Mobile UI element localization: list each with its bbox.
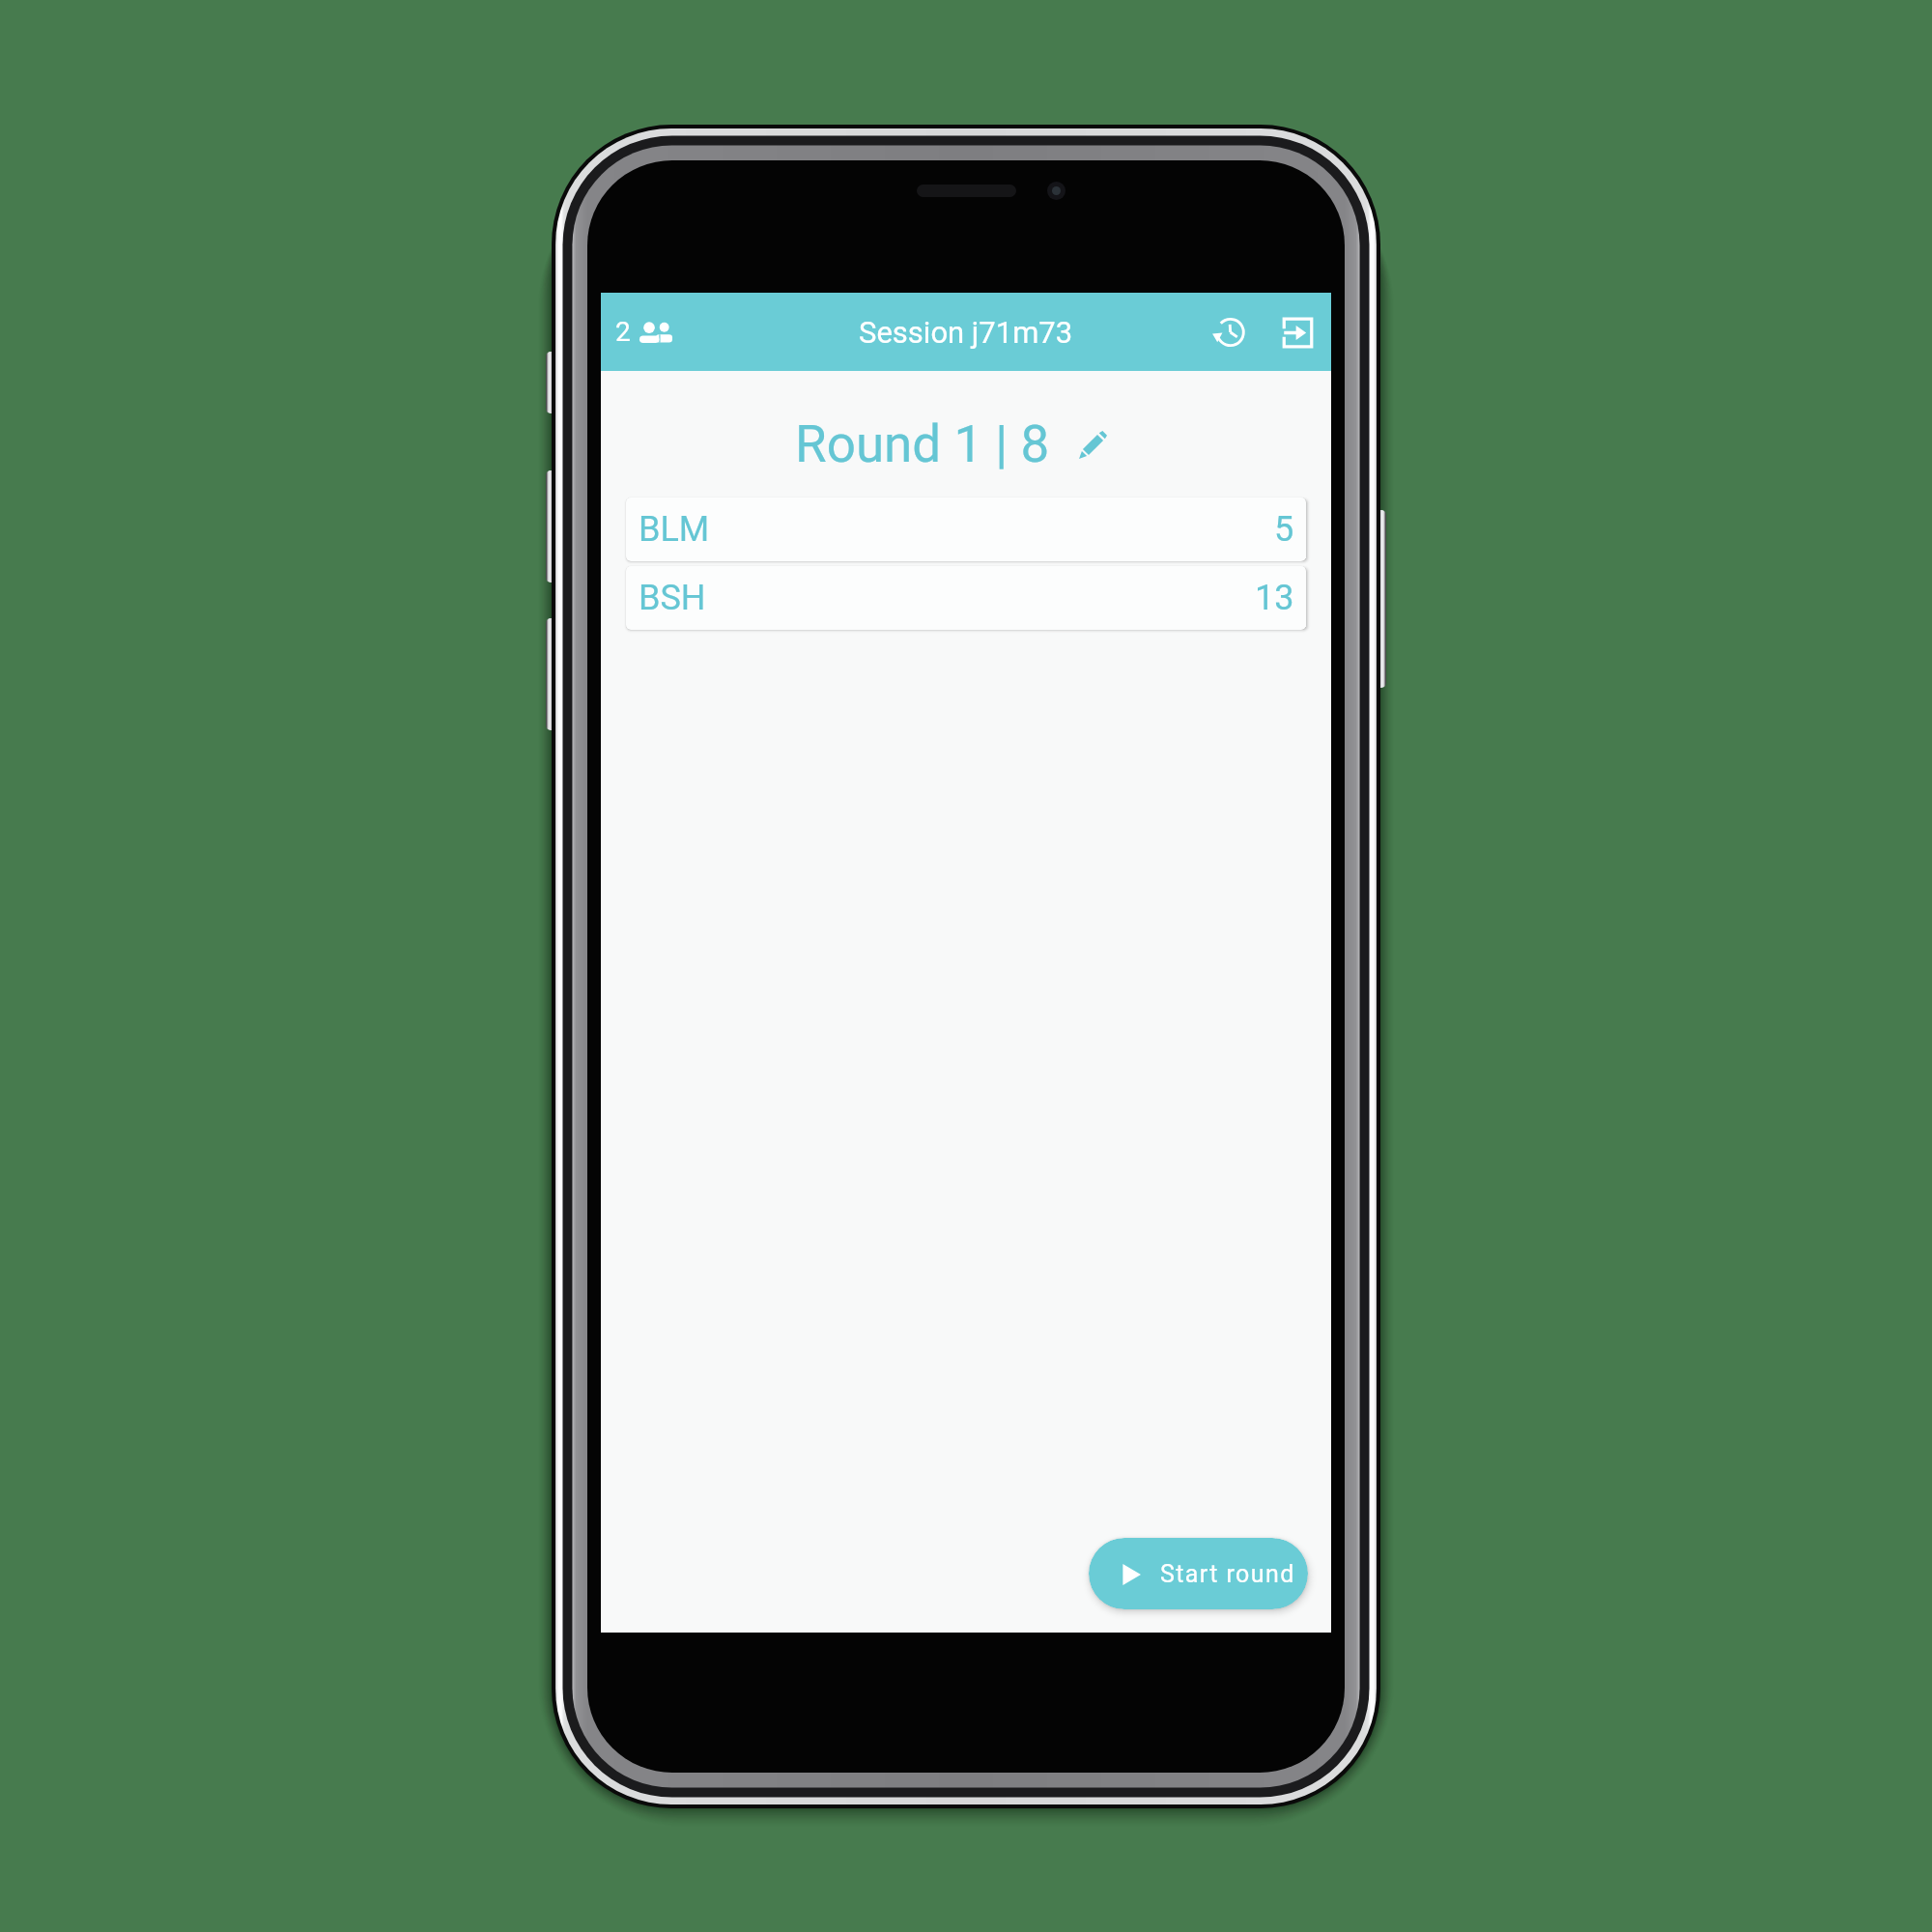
staticText: BSH [639, 578, 706, 618]
button[interactable]: History [1205, 308, 1253, 356]
staticText: BLM [639, 509, 710, 550]
staticText: 5 [1274, 509, 1294, 550]
staticText: Round 1 | 8 [795, 414, 1050, 474]
button[interactable]: Start round [1089, 1538, 1308, 1609]
staticText: 2 [615, 316, 631, 348]
button[interactable]: Players [611, 312, 676, 352]
button[interactable]: Leave session [1273, 308, 1321, 356]
button[interactable]: BLM [626, 497, 1306, 561]
button[interactable]: BSH [626, 566, 1306, 630]
staticText: Start round [1160, 1560, 1295, 1588]
staticText: Session j71m73 [859, 315, 1073, 350]
staticText: 13 [1255, 578, 1294, 618]
button[interactable]: Edit round [1065, 417, 1120, 471]
